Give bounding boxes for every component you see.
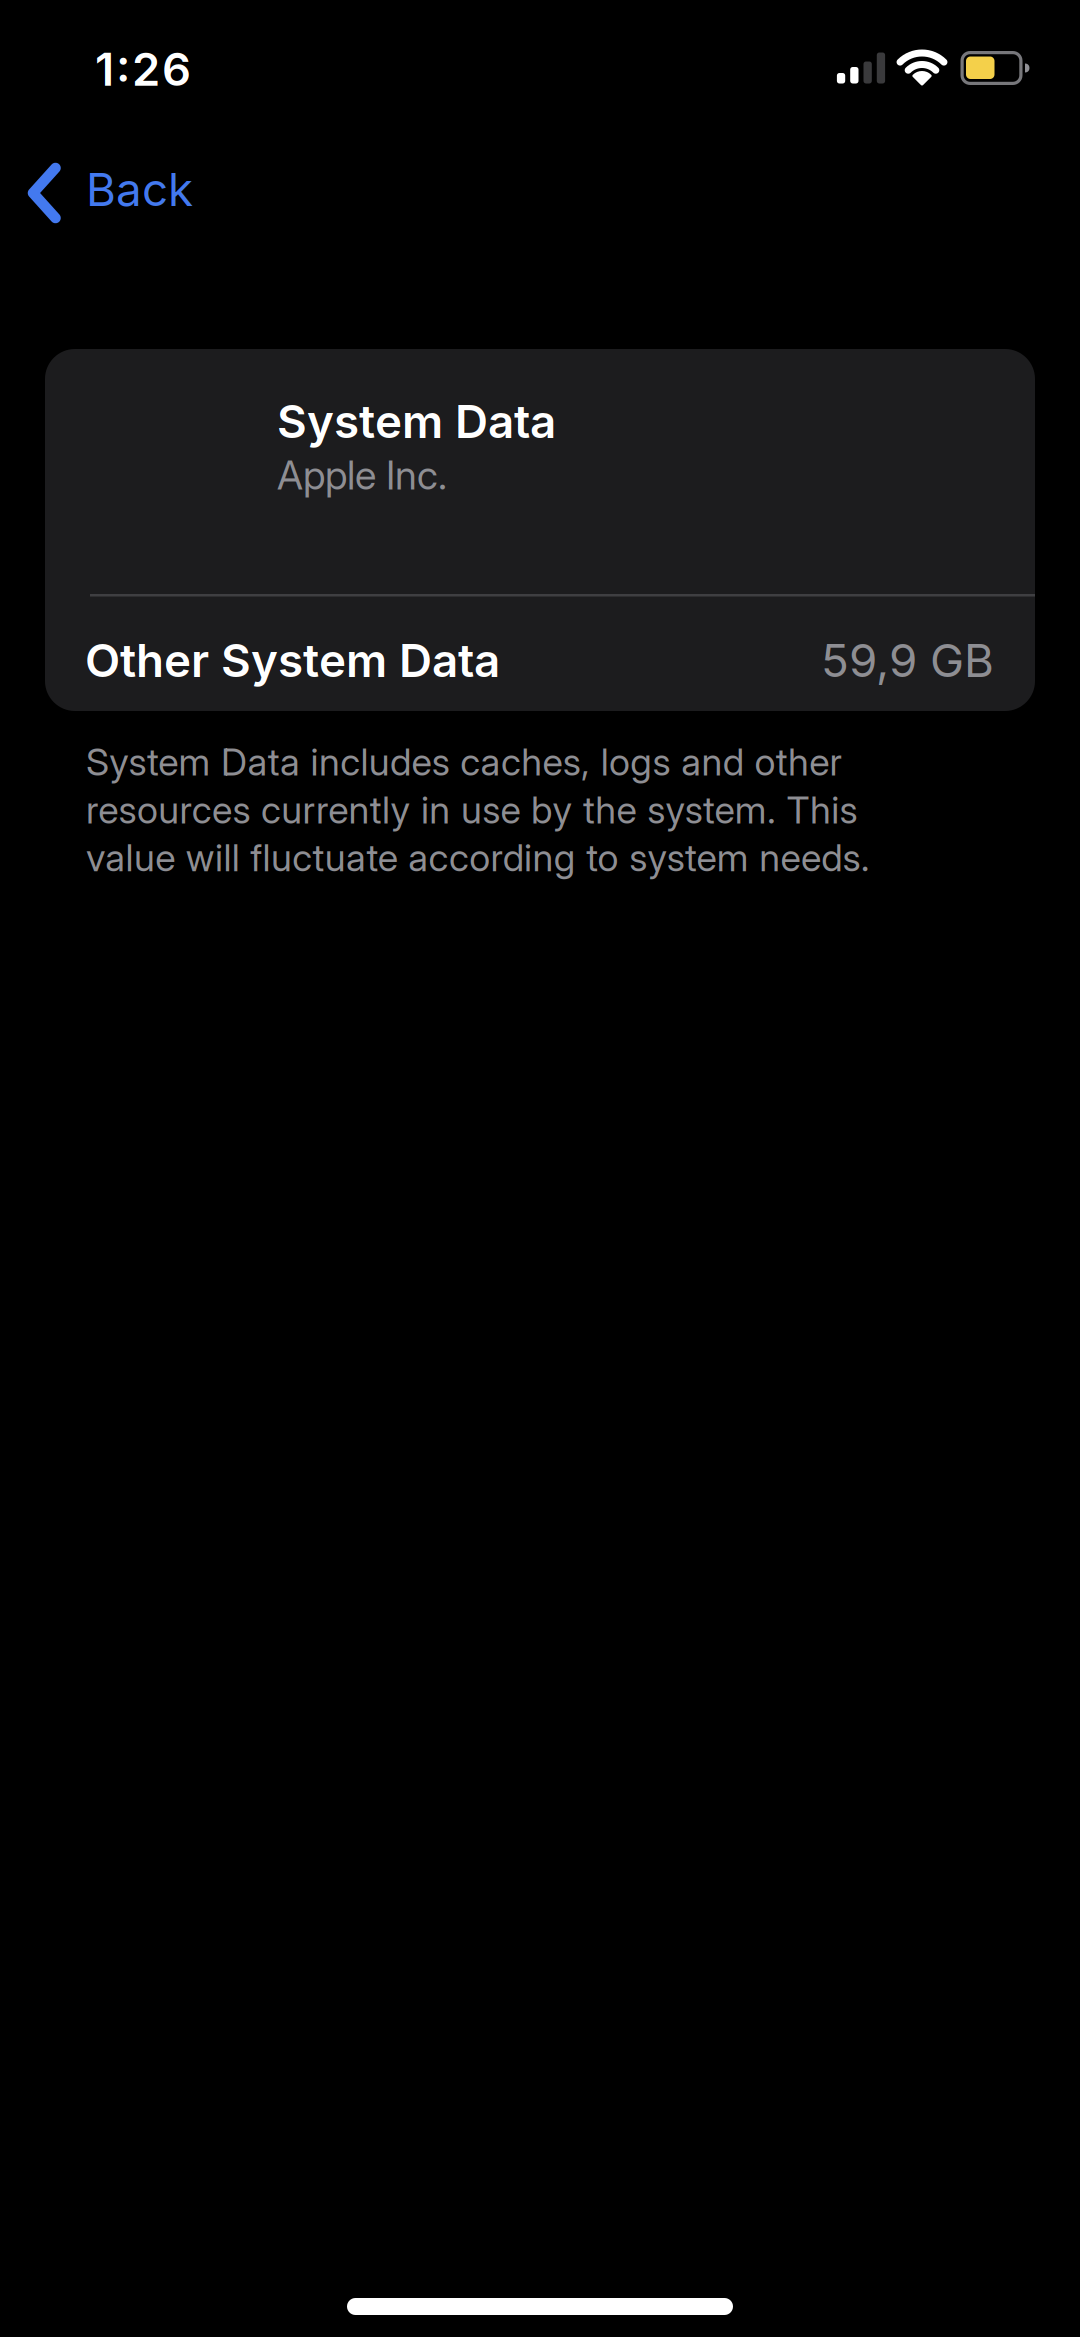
button[interactable]: Back (26, 160, 246, 230)
staticText: 1:26 (95, 42, 191, 96)
staticText: 59,9 GB (821, 633, 994, 687)
staticText: System Data includes caches, logs and ot… (86, 740, 870, 880)
staticText: Other System Data (85, 633, 500, 687)
staticText: System Data (277, 394, 556, 448)
staticText: Back (86, 162, 193, 216)
staticText: Apple Inc. (277, 452, 447, 498)
